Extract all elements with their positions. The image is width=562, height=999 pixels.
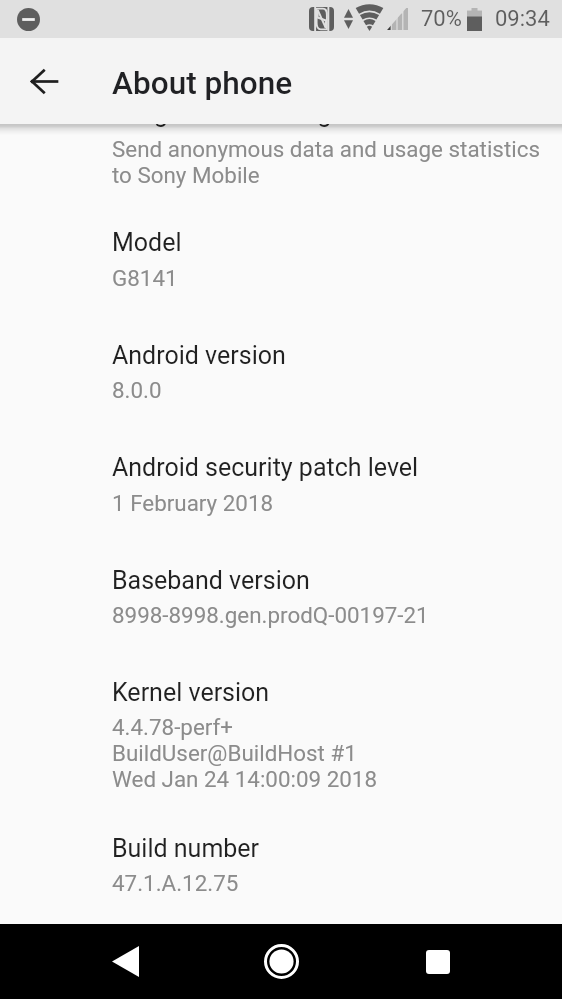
staticText: About phone xyxy=(112,65,293,102)
button[interactable]: Build number xyxy=(0,818,562,916)
staticText: 47.1.A.12.75 xyxy=(112,870,239,896)
staticText: Kernel version xyxy=(112,678,270,707)
button[interactable]: Back xyxy=(16,53,72,109)
staticText: 8998-8998.gen.prodQ-00197-21 xyxy=(112,602,429,628)
staticText: Diagnostics & usage xyxy=(118,99,345,128)
button[interactable]: Diagnostics & usage xyxy=(0,95,562,200)
staticText: Baseband version xyxy=(112,566,310,595)
button[interactable]: Recent apps xyxy=(409,924,466,999)
button[interactable]: Back xyxy=(97,924,154,999)
button[interactable]: Android security patch level xyxy=(0,430,562,535)
button[interactable]: Android version xyxy=(0,318,562,422)
staticText: Android security patch level xyxy=(112,453,419,482)
staticText: 09:34 xyxy=(495,6,550,32)
staticText: to Sony Mobile xyxy=(112,162,260,188)
staticText: 8.0.0 xyxy=(112,377,162,403)
staticText: G8141 xyxy=(112,265,178,291)
staticText: BuildUser@BuildHost #1 xyxy=(112,740,357,766)
button[interactable]: Baseband version xyxy=(0,543,562,648)
button[interactable]: Model xyxy=(0,205,562,310)
staticText: Android version xyxy=(112,341,286,370)
staticText: Wed Jan 24 14:00:09 2018 xyxy=(112,766,377,792)
staticText: Build number xyxy=(112,834,260,863)
button[interactable]: Home xyxy=(252,924,310,999)
staticText: Send anonymous data and usage statistics xyxy=(112,136,540,162)
staticText: Model xyxy=(112,228,182,257)
staticText: 1 February 2018 xyxy=(112,490,274,516)
staticText: 70% xyxy=(421,6,462,32)
staticText: 4.4.78-perf+ xyxy=(112,714,234,740)
button[interactable]: Kernel version xyxy=(0,655,562,812)
